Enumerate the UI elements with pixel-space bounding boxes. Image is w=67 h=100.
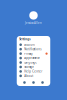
button[interactable]: Language bbox=[17, 60, 50, 65]
staticText: Jessica Allen bbox=[25, 21, 42, 25]
staticText: Appearance bbox=[24, 56, 40, 60]
staticText: Notifications bbox=[24, 47, 41, 51]
button[interactable]: About bbox=[17, 74, 50, 78]
staticText: Language bbox=[24, 61, 37, 64]
button[interactable]: Appearance bbox=[17, 56, 50, 60]
staticText: Storage bbox=[24, 65, 34, 69]
button[interactable]: Help Center bbox=[17, 69, 50, 74]
staticText: About bbox=[24, 74, 33, 78]
staticText: Settings bbox=[19, 37, 30, 41]
staticText: Account bbox=[24, 43, 35, 46]
button[interactable]: Account bbox=[17, 42, 50, 47]
button[interactable]: Storage bbox=[17, 65, 50, 69]
staticText: Help Center bbox=[24, 70, 42, 73]
button[interactable]: Notifications bbox=[17, 47, 50, 51]
staticText: Privacy bbox=[24, 52, 32, 55]
button[interactable]: Privacy bbox=[17, 51, 50, 56]
